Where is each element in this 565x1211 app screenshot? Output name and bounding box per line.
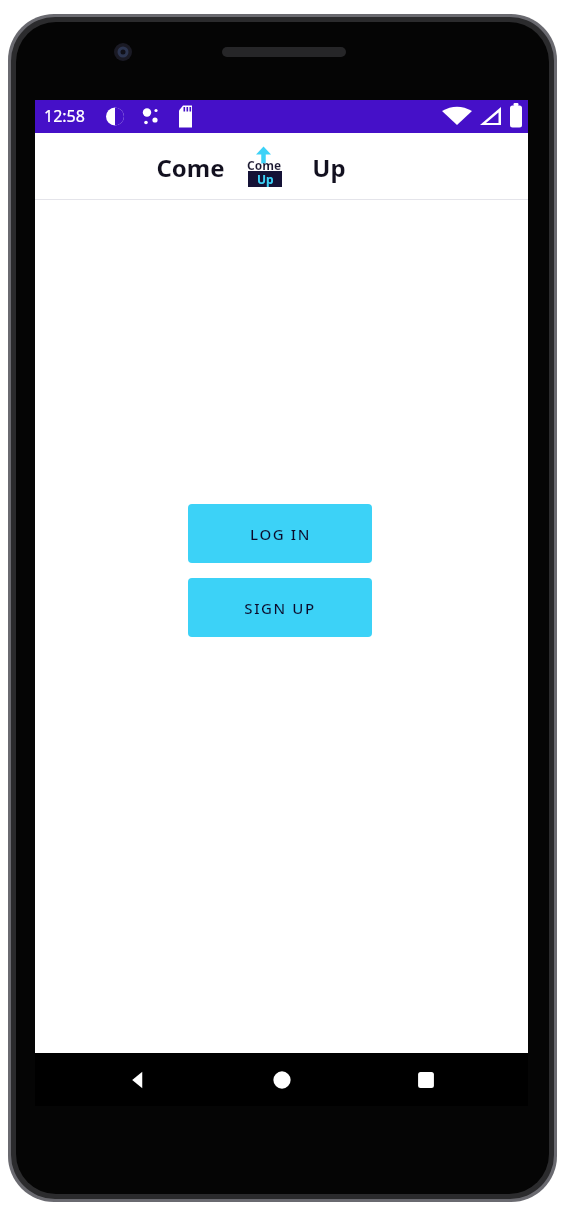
staticText: 12:58	[44, 105, 85, 127]
staticText: SIGN UP	[244, 598, 316, 618]
staticText: Come	[156, 151, 225, 184]
button[interactable]: Back	[113, 1056, 161, 1104]
button[interactable]: Home	[258, 1056, 306, 1104]
button[interactable]: LOG IN	[188, 504, 372, 563]
button[interactable]: Recent apps	[402, 1056, 450, 1104]
button[interactable]: SIGN UP	[188, 578, 372, 637]
staticText: Come	[247, 157, 282, 173]
staticText: Up	[257, 171, 274, 187]
staticText: Up	[312, 151, 346, 184]
staticText: LOG IN	[250, 524, 311, 544]
